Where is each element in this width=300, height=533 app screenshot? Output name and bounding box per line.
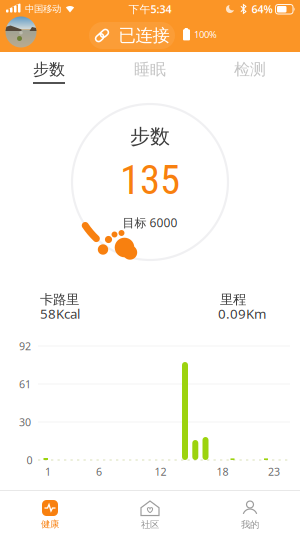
button[interactable]: 步数 <box>0 54 99 84</box>
staticText: 30 <box>19 415 31 429</box>
staticText: 92 <box>19 339 31 353</box>
staticText: 0 <box>26 453 32 467</box>
staticText: 23 <box>268 464 280 479</box>
staticText: 61 <box>19 377 31 391</box>
button[interactable]: 睡眠 <box>100 54 200 84</box>
staticText: 12 <box>154 464 166 479</box>
staticText: 1 <box>45 464 51 479</box>
staticText: 检测 <box>234 60 266 79</box>
staticText: 中国移动 <box>25 3 61 15</box>
staticText: 6 <box>96 464 102 479</box>
button[interactable]: 个人资料 <box>5 16 36 47</box>
button[interactable]: 我的 <box>202 495 298 533</box>
staticText: 135 <box>120 156 180 204</box>
staticText: 已连接 <box>119 25 170 46</box>
staticText: 社区 <box>141 519 159 530</box>
staticText: 我的 <box>241 519 259 530</box>
staticText: 目标 6000 <box>122 214 177 230</box>
staticText: 健康 <box>41 518 59 530</box>
staticText: 睡眠 <box>134 60 166 79</box>
button[interactable]: 社区 <box>102 495 198 533</box>
staticText: 步数 <box>130 124 170 149</box>
staticText: 卡路里 <box>40 291 79 308</box>
staticText: 下午5:34 <box>128 2 171 16</box>
button[interactable]: 已连接 <box>89 22 175 49</box>
staticText: 0.09Km <box>218 305 266 322</box>
button[interactable]: 健康 <box>2 495 98 533</box>
staticText: 58Kcal <box>40 305 80 322</box>
staticText: 步数 <box>33 60 65 79</box>
button[interactable]: 检测 <box>200 54 300 84</box>
staticText: 18 <box>216 464 228 479</box>
staticText: 里程 <box>220 291 246 308</box>
staticText: 100% <box>194 28 217 41</box>
staticText: 64% <box>251 2 272 16</box>
